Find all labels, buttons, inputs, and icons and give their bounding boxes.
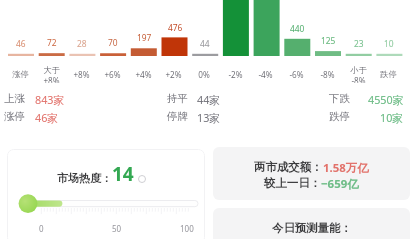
- staticText: 停牌: [167, 110, 188, 123]
- staticText: 大于: [43, 65, 60, 75]
- staticText: 下跌: [329, 92, 350, 105]
- staticText: -2%: [228, 69, 243, 80]
- staticText: 197: [137, 32, 152, 43]
- staticText: 持平: [167, 92, 188, 105]
- staticText: 跌停: [380, 69, 397, 79]
- staticText: 46: [16, 38, 26, 49]
- staticText: 0: [39, 223, 44, 234]
- staticText: 涨停: [12, 69, 29, 79]
- staticText: 今日预测量能：: [272, 221, 352, 235]
- staticText: 13家: [197, 110, 221, 125]
- button[interactable]: 今日预测量能：: [213, 208, 410, 239]
- staticText: 440: [290, 23, 305, 34]
- staticText: +8%: [73, 69, 90, 80]
- staticText: 市场热度：: [57, 171, 112, 185]
- staticText: 50: [112, 223, 122, 234]
- staticText: 10家: [380, 110, 404, 125]
- staticText: +2%: [165, 69, 182, 80]
- staticText: +6%: [104, 69, 121, 80]
- staticText: 843家: [35, 92, 65, 107]
- staticText: 跌停: [329, 110, 350, 123]
- staticText: 1.58万亿: [323, 160, 369, 176]
- staticText: 70: [108, 37, 118, 48]
- staticText: 两市成交额：: [254, 160, 323, 174]
- staticText: +4%: [135, 69, 152, 80]
- staticText: 0%: [198, 69, 210, 80]
- staticText: 小于: [350, 65, 367, 75]
- staticText: 28: [77, 38, 87, 49]
- button[interactable]: 市场热度说明: [138, 175, 146, 183]
- staticText: 476: [168, 22, 183, 33]
- staticText: 14: [112, 161, 134, 187]
- staticText: −659亿: [321, 176, 359, 192]
- button[interactable]: 两市成交额：: [213, 147, 410, 200]
- staticText: 44家: [197, 92, 221, 107]
- staticText: 10: [384, 38, 394, 49]
- staticText: 较上一日：: [264, 176, 321, 190]
- button[interactable]: 市场热度：: [7, 149, 205, 239]
- staticText: +8%: [43, 75, 60, 83]
- staticText: 4550家: [368, 92, 404, 107]
- staticText: 100: [180, 223, 194, 234]
- staticText: -8%: [351, 75, 366, 83]
- staticText: -8%: [320, 69, 335, 80]
- staticText: 72: [47, 37, 57, 48]
- staticText: 125: [321, 35, 336, 46]
- staticText: -6%: [289, 69, 304, 80]
- staticText: 涨停: [4, 110, 25, 123]
- staticText: 23: [354, 38, 364, 49]
- staticText: -4%: [258, 69, 273, 80]
- staticText: 44: [200, 38, 210, 49]
- staticText: 上涨: [4, 92, 25, 105]
- staticText: 46家: [35, 110, 59, 125]
